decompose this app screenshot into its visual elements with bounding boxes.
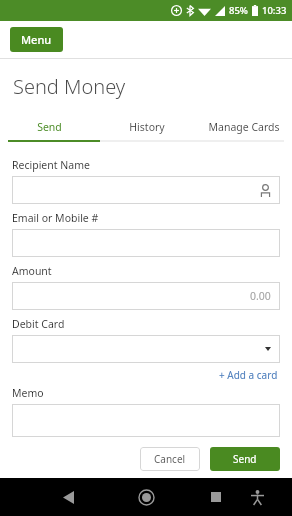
button[interactable]: Choose contact bbox=[12, 176, 280, 204]
staticText: Amount bbox=[12, 264, 52, 278]
staticText: Memo bbox=[12, 386, 44, 400]
staticText: History bbox=[129, 120, 165, 134]
staticText: Recipient Name bbox=[12, 158, 90, 172]
button[interactable]: + Add a card bbox=[217, 366, 280, 384]
staticText: Manage Cards bbox=[208, 120, 280, 134]
button[interactable]: Send bbox=[0, 114, 98, 140]
button[interactable]: Menu bbox=[10, 27, 63, 52]
button[interactable]: Recent apps bbox=[203, 484, 229, 510]
button[interactable]: Manage Cards bbox=[195, 114, 292, 140]
staticText: Send bbox=[37, 120, 62, 134]
staticText: 85% bbox=[229, 4, 248, 17]
staticText: Menu bbox=[21, 32, 52, 47]
button[interactable]: Send bbox=[210, 447, 280, 471]
staticText: 10:33 bbox=[262, 4, 287, 17]
button[interactable] bbox=[12, 404, 280, 437]
other: Choose contact bbox=[260, 184, 271, 197]
button[interactable]: 0.00 bbox=[12, 282, 280, 310]
button[interactable]: Home bbox=[133, 484, 159, 510]
staticText: Debit Card bbox=[12, 317, 65, 331]
button[interactable] bbox=[12, 229, 280, 257]
staticText: 0.00 bbox=[250, 289, 271, 303]
staticText: Send Money bbox=[13, 73, 126, 100]
button[interactable]: Cancel bbox=[140, 447, 200, 471]
staticText: Cancel bbox=[154, 452, 186, 466]
staticText: Email or Mobile # bbox=[12, 211, 99, 225]
staticText: + Add a card bbox=[219, 368, 278, 382]
button[interactable] bbox=[12, 335, 280, 363]
button[interactable]: Accessibility bbox=[244, 484, 270, 510]
staticText: Send bbox=[233, 452, 257, 466]
button[interactable]: Back bbox=[55, 484, 81, 510]
button[interactable]: History bbox=[98, 114, 195, 140]
